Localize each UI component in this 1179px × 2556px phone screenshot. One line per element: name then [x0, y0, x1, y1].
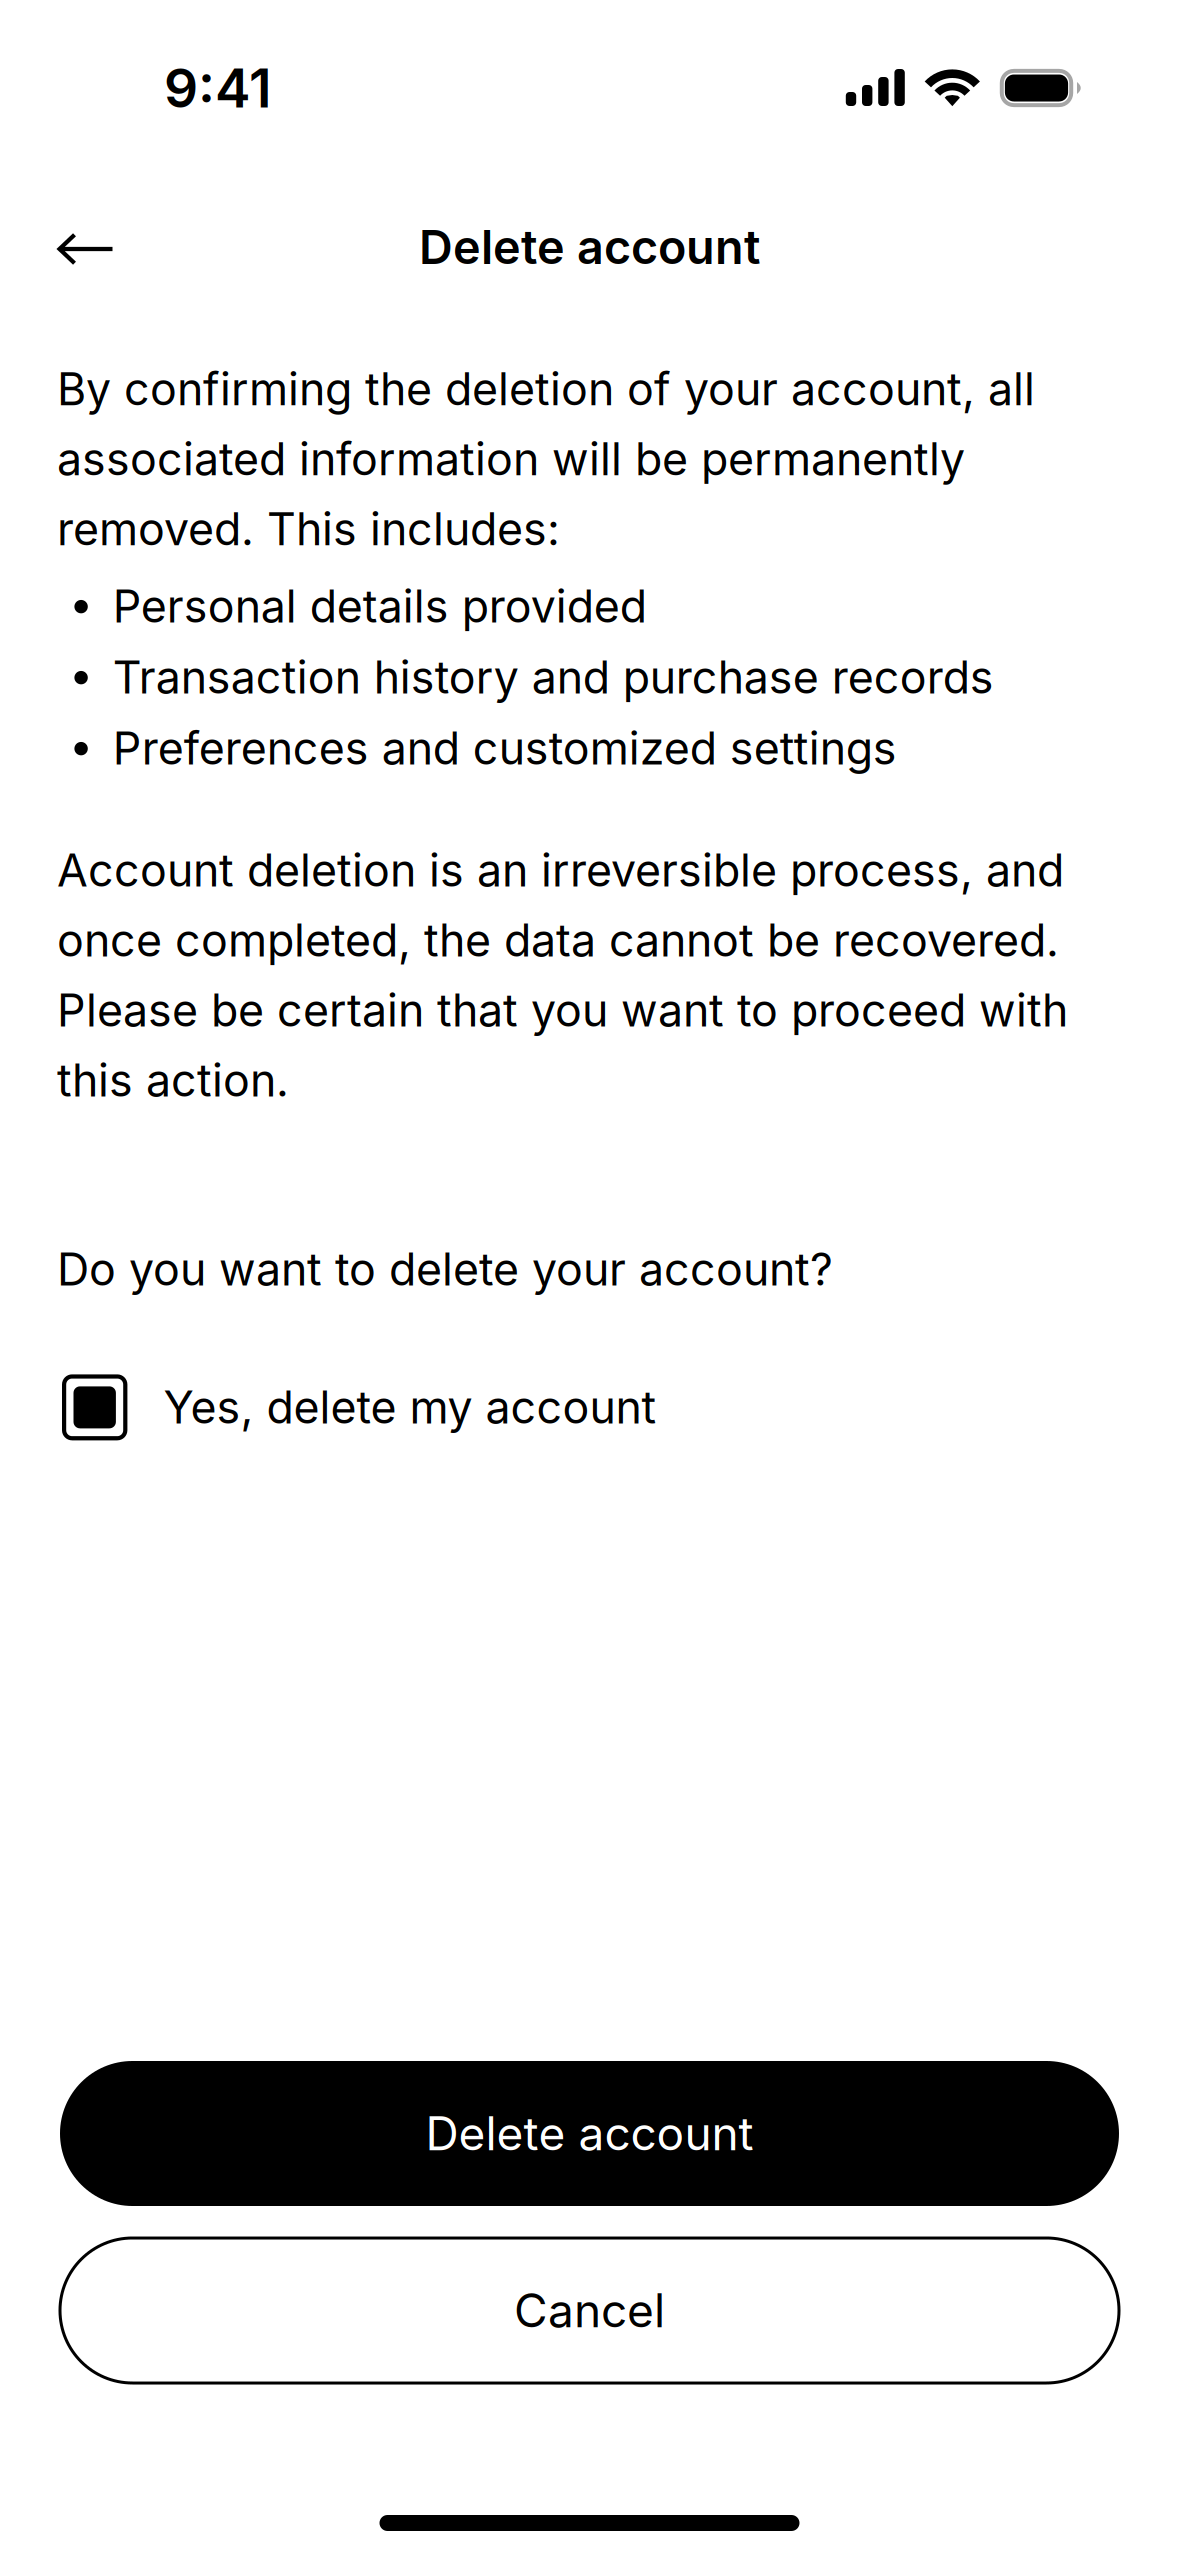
staticText: Yes, delete my account [163, 1380, 656, 1434]
staticText: Cancel [514, 2283, 665, 2338]
button[interactable]: Delete account [60, 2061, 1119, 2206]
staticText: Transaction history and purchase records [113, 650, 994, 704]
staticText: Account deletion is an irreversible proc… [57, 843, 1068, 1107]
staticText: Do you want to delete your account? [57, 1242, 833, 1296]
button[interactable]: Yes, delete my account [57, 1365, 1122, 1449]
staticText: By confirming the deletion of your accou… [57, 362, 1035, 556]
staticText: Personal details provided [113, 579, 647, 633]
staticText: Preferences and customized settings [113, 721, 897, 775]
button[interactable]: Back [38, 199, 134, 295]
button[interactable]: Cancel [60, 2238, 1119, 2383]
staticText: Delete account [419, 219, 760, 275]
staticText: 9:41 [164, 56, 272, 120]
staticText: Delete account [425, 2106, 753, 2161]
